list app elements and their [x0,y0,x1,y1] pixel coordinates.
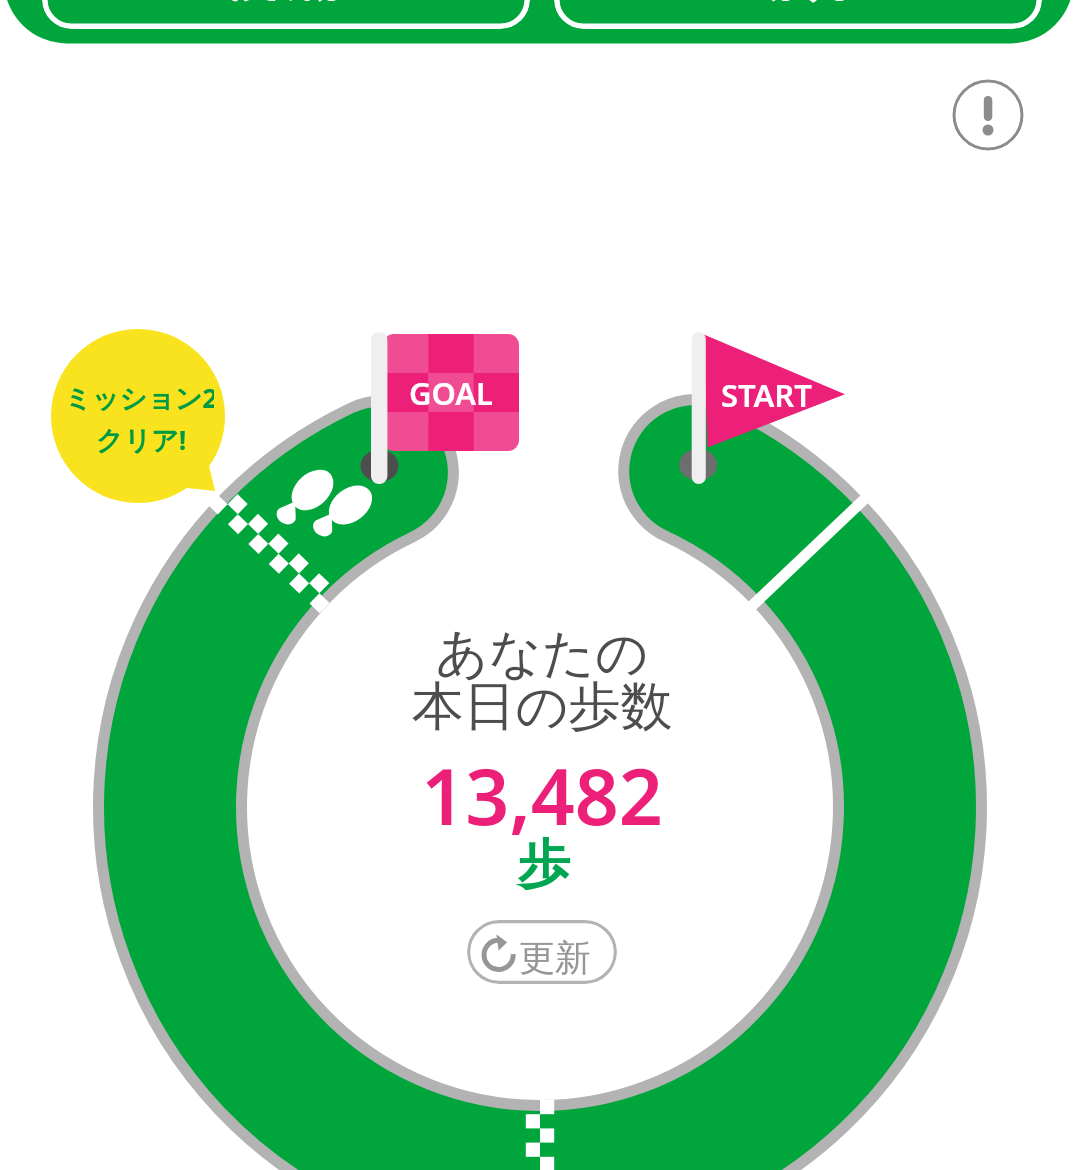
button[interactable]: Information [952,79,1024,151]
staticText: 歩 [294,832,794,898]
button[interactable]: 更新 [467,920,617,984]
staticText: 更新 [519,935,591,980]
staticText: あなたの 本日の歩数 [411,621,673,739]
button[interactable]: おさんぽ [42,0,530,29]
other: Start [690,332,852,484]
staticText: 13,482 [292,743,792,848]
other: Goal [371,332,523,484]
button[interactable]: ごほうび [554,0,1042,29]
staticText: ごほうび [739,0,858,6]
staticText: START [721,374,812,416]
staticText: GOAL [409,372,494,414]
staticText: おさんぽ [227,0,346,6]
staticText: ミッション2 クリア! [64,379,214,458]
